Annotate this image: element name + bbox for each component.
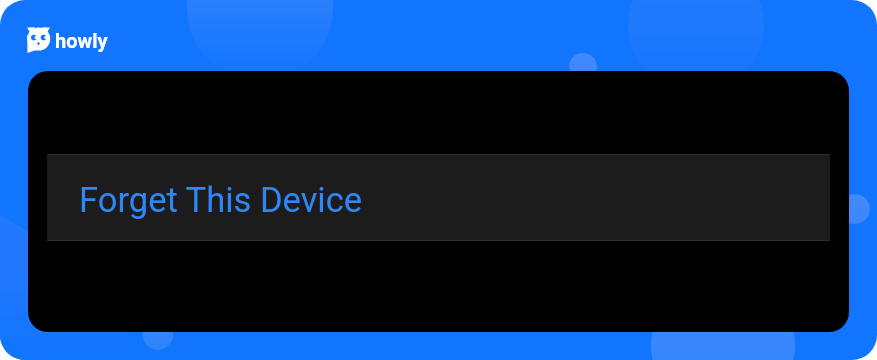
staticText: Forget This Device bbox=[79, 180, 363, 220]
staticText: howly bbox=[55, 29, 108, 52]
button[interactable]: Forget This Device bbox=[47, 154, 830, 241]
